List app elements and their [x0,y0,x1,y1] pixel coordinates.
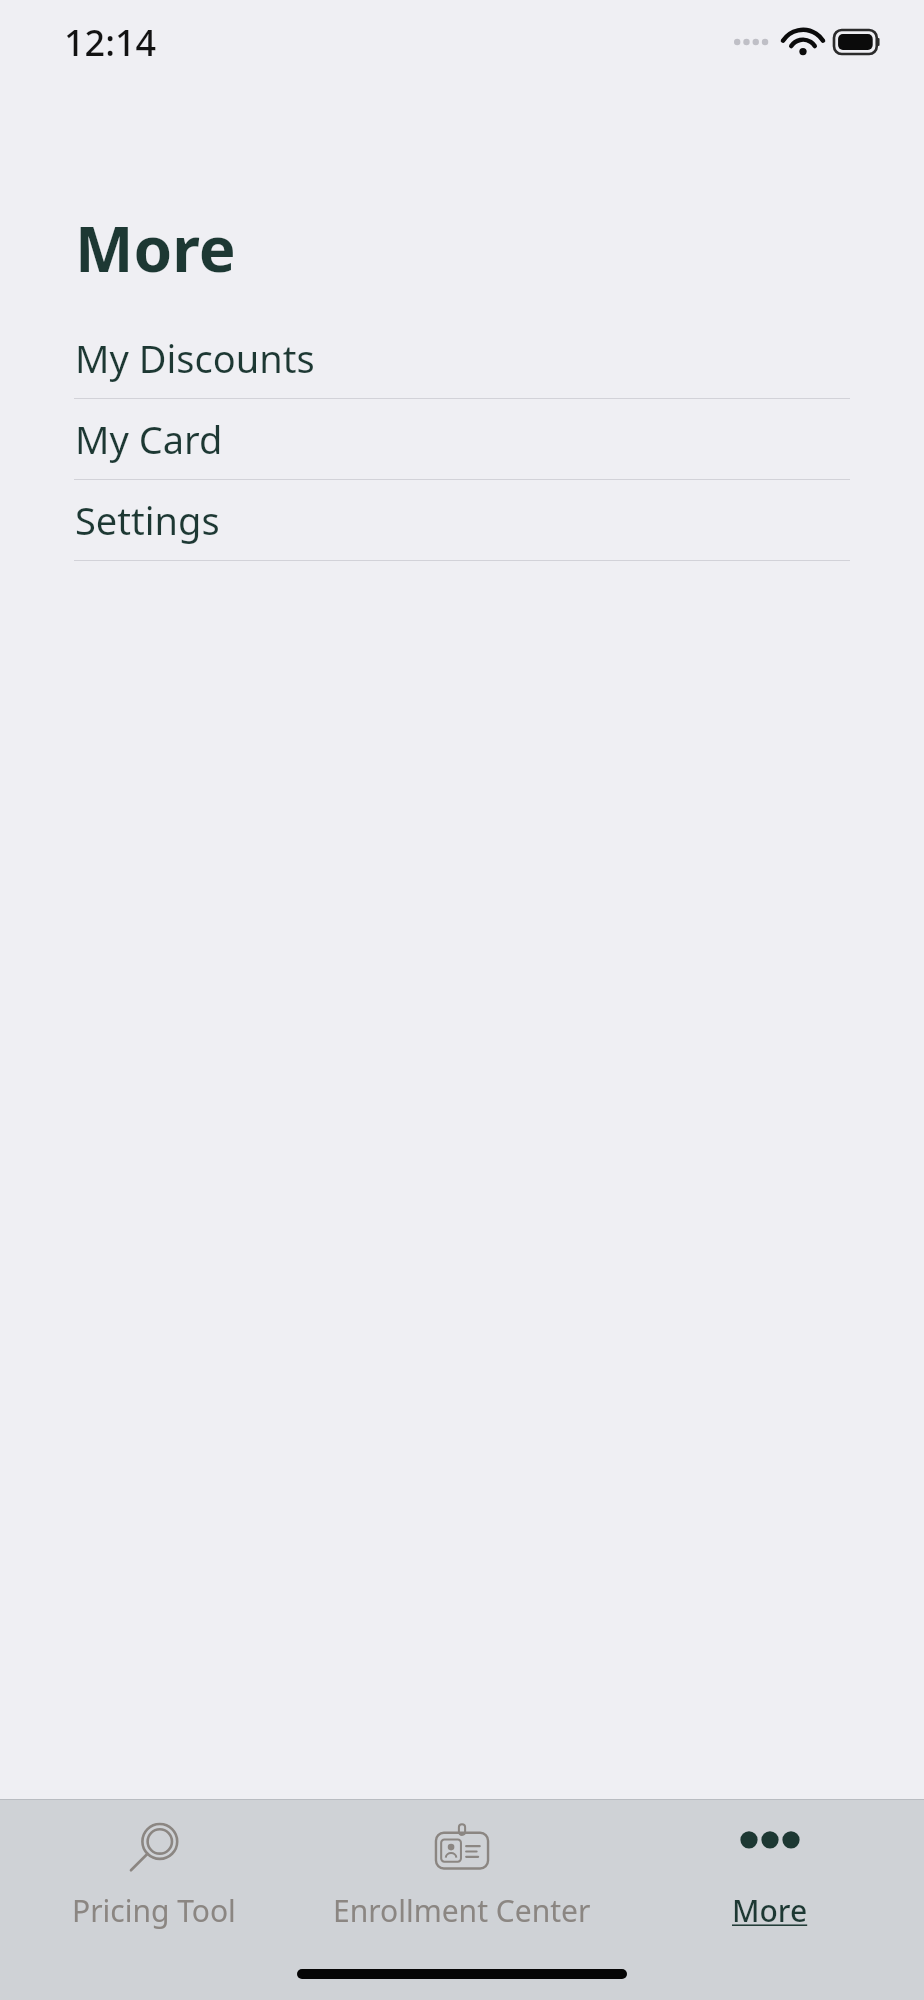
other: Pricing Tool [125,1822,183,1876]
button[interactable]: My Discounts [0,318,924,399]
staticText: Enrollment Center [333,1890,591,1931]
other: More [741,1822,799,1876]
staticText: More [732,1890,808,1931]
staticText: Pricing Tool [72,1890,236,1931]
button[interactable]: My Card [0,399,924,480]
staticText: Settings [75,494,220,546]
button[interactable]: Settings [0,480,924,561]
staticText: More [75,206,236,290]
other: Enrollment Center [431,1822,493,1876]
button[interactable]: Enrollment Center [308,1800,616,1931]
button[interactable]: Pricing Tool [0,1800,308,1931]
staticText: My Discounts [75,332,315,384]
button[interactable]: More [616,1800,924,1931]
staticText: My Card [75,413,223,465]
staticText: 12:14 [64,18,157,67]
